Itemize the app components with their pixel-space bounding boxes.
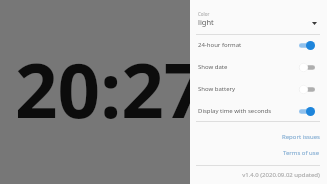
button[interactable]: Show date [190,56,327,78]
other: On [299,107,315,116]
staticText: v1.4.0 (2020.09.02 updated) [242,171,320,179]
staticText: Color [198,11,210,17]
other: Off [299,63,315,72]
staticText: Terms of use [283,149,320,157]
staticText: 20:27 [15,38,207,139]
button[interactable]: Report issues [190,130,327,144]
staticText: Show date [198,63,228,71]
other: Off [299,85,315,94]
button[interactable]: Show battery [190,78,327,100]
button[interactable]: 24-hour format [190,34,327,56]
staticText: Report issues [282,133,320,141]
staticText: 24-hour format [198,41,242,49]
other: On [299,41,315,50]
button[interactable]: Display time with seconds [190,100,327,122]
button[interactable]: Terms of use [190,146,327,160]
staticText: Show battery [198,85,236,93]
other: Open color menu [312,22,317,25]
button[interactable]: Color [190,6,327,32]
staticText: Display time with seconds [198,107,272,115]
staticText: light [198,17,214,27]
